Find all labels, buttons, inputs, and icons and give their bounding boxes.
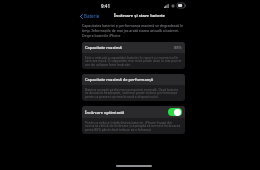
staticText: Încărcare și stare baterie xyxy=(114,13,165,19)
staticText: Baterie xyxy=(84,13,100,19)
staticText: Este o măsură a capacității bateriei în … xyxy=(85,55,182,67)
button[interactable]: Încărcare optimizată xyxy=(82,106,185,118)
staticText: Capacitate maximă xyxy=(85,45,122,50)
button[interactable]: Capacitate maximă xyxy=(82,42,185,69)
staticText: Bateria acceptă performanța maximă norma… xyxy=(85,87,182,99)
staticText: Capacitate maximă de performanță xyxy=(85,77,154,82)
staticText: Pentru a reduce îmbătrânirea bateriei, i… xyxy=(85,120,182,132)
staticText: Încărcare optimizată xyxy=(85,110,125,115)
button[interactable]: Baterie xyxy=(79,12,101,20)
staticText: Capacitatea bateriei și performanța maxi… xyxy=(82,23,185,38)
button[interactable]: Capacitate maximă de performanță xyxy=(82,74,185,101)
staticText: 9:41 xyxy=(101,3,110,9)
button[interactable]: Încărcare optimizată a bateriei, activat xyxy=(168,108,182,116)
staticText: 88% xyxy=(174,45,182,50)
